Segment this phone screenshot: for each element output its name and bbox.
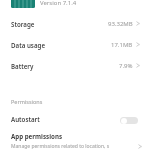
button[interactable]: Autostart toggle [120, 117, 138, 124]
button[interactable]: Storage [0, 13, 150, 34]
staticText: App permissions [11, 132, 63, 140]
staticText: Storage [11, 20, 35, 28]
staticText: Manage permissions related to location, … [11, 143, 110, 150]
staticText: Data usage [11, 41, 46, 49]
staticText: Permissions [11, 98, 43, 105]
button[interactable]: App permissions [0, 132, 150, 150]
button[interactable]: Data usage [0, 34, 150, 55]
staticText: Battery [11, 62, 34, 70]
staticText: Version 7.1.4 [40, 0, 77, 7]
staticText: 93.32MB [108, 20, 133, 28]
button[interactable]: Battery [0, 55, 150, 76]
button[interactable]: Autostart [0, 110, 150, 127]
staticText: 17.1MB [111, 41, 133, 49]
staticText: 7.9% [119, 62, 133, 70]
staticText: Autostart [11, 115, 40, 123]
